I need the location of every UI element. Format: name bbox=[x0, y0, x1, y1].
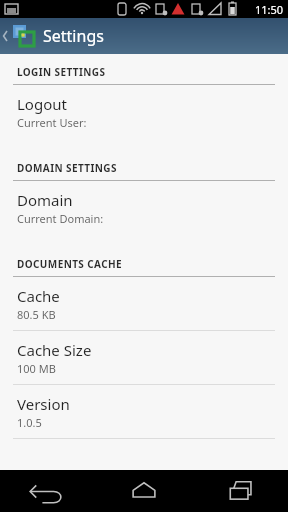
staticText: Settings bbox=[43, 25, 104, 47]
staticText: LOGIN SETTINGS bbox=[17, 65, 106, 79]
button[interactable]: Domain bbox=[0, 181, 288, 234]
staticText: Cache bbox=[17, 286, 60, 306]
button[interactable]: Back bbox=[0, 470, 96, 512]
staticText: Cache Size bbox=[17, 340, 92, 360]
button[interactable]: Cache Size bbox=[0, 331, 288, 384]
staticText: 100 MB bbox=[17, 361, 56, 376]
staticText: 11:50 bbox=[255, 2, 284, 17]
button[interactable]: Version bbox=[0, 385, 288, 438]
staticText: DOCUMENTS CACHE bbox=[17, 257, 123, 271]
staticText: 80.5 KB bbox=[17, 307, 56, 322]
button[interactable]: Recents bbox=[192, 470, 288, 512]
staticText: DOMAIN SETTINGS bbox=[17, 161, 117, 175]
staticText: Version bbox=[17, 394, 70, 414]
staticText: 1.0.5 bbox=[17, 415, 42, 430]
button[interactable]: Cache bbox=[0, 277, 288, 330]
staticText: Domain bbox=[17, 190, 73, 210]
staticText: Current User: bbox=[17, 115, 87, 130]
staticText: Logout bbox=[17, 94, 67, 114]
staticText: Current Domain: bbox=[17, 211, 104, 226]
button[interactable]: Home bbox=[96, 470, 192, 512]
button[interactable]: Logout bbox=[0, 85, 288, 138]
button[interactable]: Up, Settings bbox=[0, 18, 288, 54]
